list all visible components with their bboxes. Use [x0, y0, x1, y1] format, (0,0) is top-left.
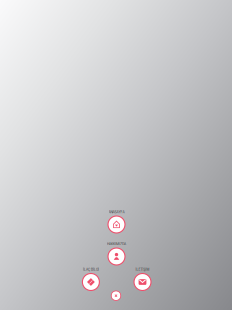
button[interactable]: Close menu: [109, 289, 123, 303]
staticText: İLAÇ BİLGİ: [83, 268, 99, 272]
staticText: ANASAYFA: [109, 210, 125, 214]
button[interactable]: HAKKIMIZDA: [91, 238, 141, 265]
button[interactable]: İLAÇ BİLGİ: [65, 263, 115, 290]
staticText: İLETİŞİM: [136, 268, 150, 272]
button[interactable]: ANASAYFA: [91, 206, 141, 233]
staticText: HAKKIMIZDA: [107, 242, 126, 246]
button[interactable]: İLETİŞİM: [117, 263, 167, 290]
